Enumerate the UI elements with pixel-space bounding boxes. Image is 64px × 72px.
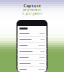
staticText: Capture [23,3,40,8]
button[interactable] [17,43,46,49]
button[interactable] [17,61,46,67]
button[interactable] [17,31,46,37]
button[interactable] [17,55,46,61]
button[interactable] [17,37,46,43]
staticText: in your garden [21,12,42,15]
staticText: every moment [23,8,41,12]
button[interactable] [17,67,46,72]
button[interactable] [17,49,46,55]
